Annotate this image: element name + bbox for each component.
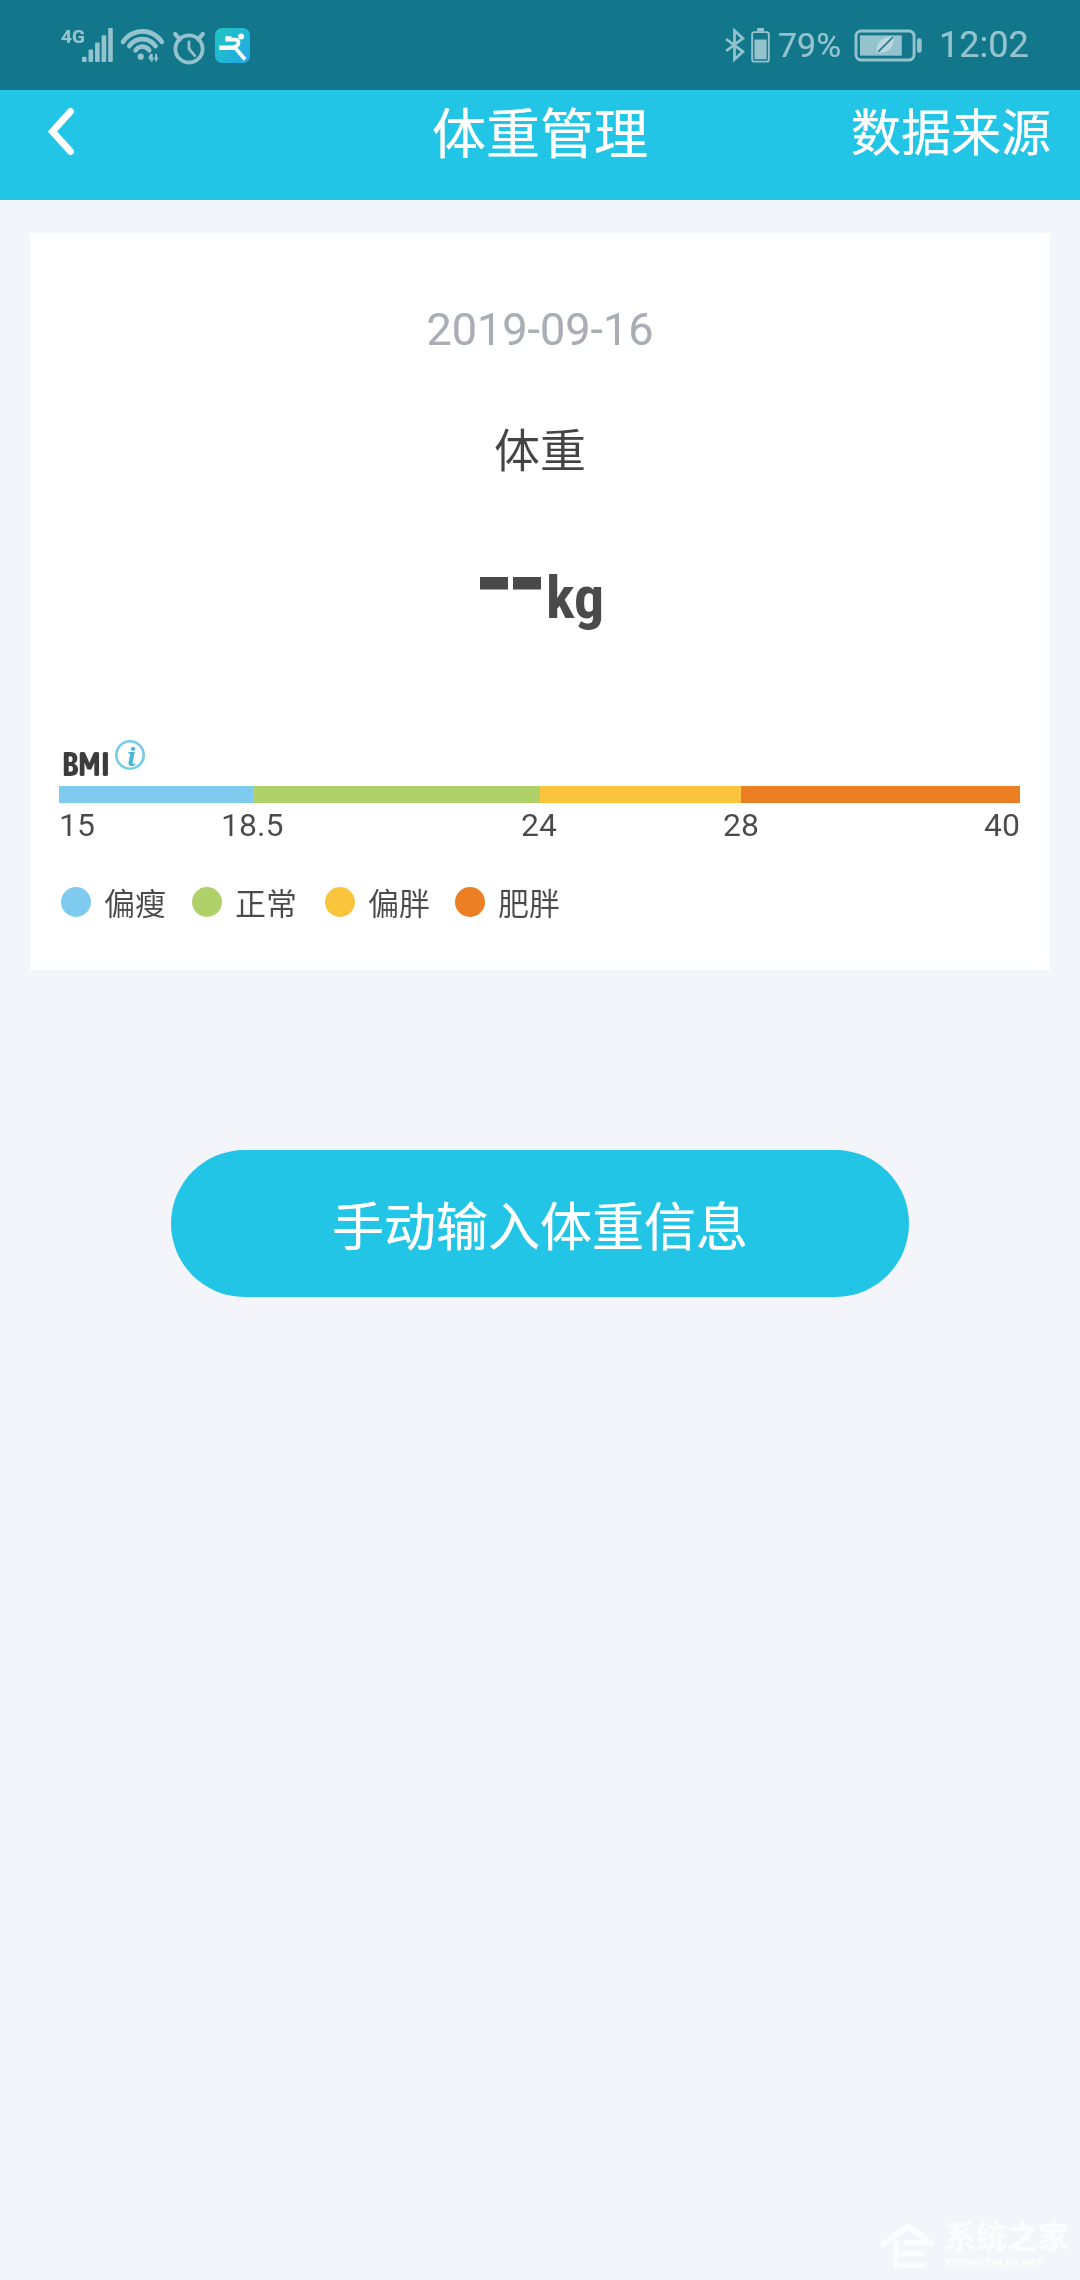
staticText: BMI xyxy=(62,744,110,783)
staticText: 正常 xyxy=(235,879,297,924)
staticText: 体重 xyxy=(30,414,1050,481)
staticText: 15 xyxy=(59,806,95,844)
staticText: 偏瘦 xyxy=(104,879,166,924)
staticText: i xyxy=(127,739,136,769)
staticText: 18.5 xyxy=(221,806,284,844)
button[interactable]: Back xyxy=(0,76,110,186)
staticText: 79% xyxy=(778,25,842,65)
staticText: 28 xyxy=(723,806,759,844)
staticText: 系统之家 xyxy=(945,2212,1069,2257)
button[interactable]: 手动输入体重信息 xyxy=(171,1150,909,1297)
staticText: 肥胖 xyxy=(498,879,560,924)
staticText: 40 xyxy=(984,806,1020,844)
staticText: 4G xyxy=(61,25,85,47)
staticText: 偏胖 xyxy=(368,879,430,924)
staticText: 2019-09-16 xyxy=(30,303,1050,356)
staticText: 12:02 xyxy=(939,24,1029,66)
button[interactable]: 数据来源 xyxy=(821,73,1080,183)
staticText: 数据来源 xyxy=(851,93,1051,163)
staticText: kg xyxy=(546,562,605,632)
staticText: 24 xyxy=(521,806,557,844)
staticText: 体重管理 xyxy=(432,91,648,169)
button[interactable]: BMI info xyxy=(115,740,145,770)
staticText: 手动输入体重信息 xyxy=(332,1186,749,1261)
